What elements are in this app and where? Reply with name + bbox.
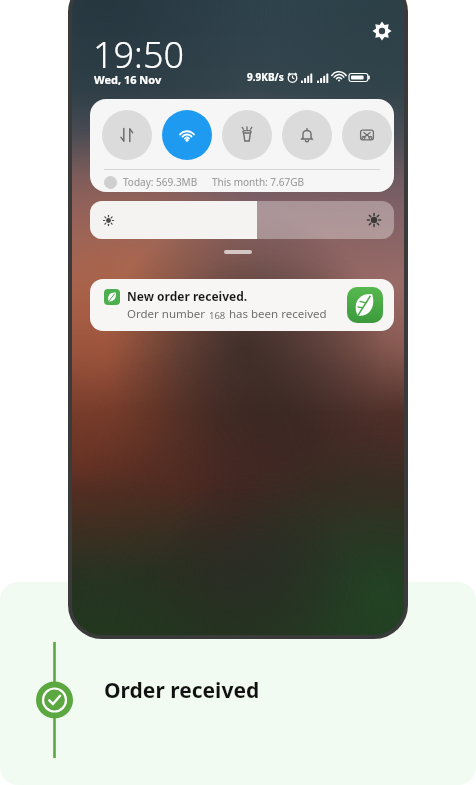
button[interactable]: Today: 569.3MB — [104, 173, 304, 191]
staticText: has been received — [226, 306, 327, 322]
staticText: New order received. — [127, 288, 248, 304]
button[interactable]: Order received — [104, 676, 260, 705]
button[interactable]: Brightness — [90, 201, 394, 239]
staticText: Order number — [127, 306, 209, 322]
button[interactable]: Settings — [369, 18, 395, 44]
button[interactable]: Mobile data — [102, 110, 152, 160]
staticText: This month: 7.67GB — [212, 175, 304, 189]
button[interactable]: Wi-Fi — [162, 110, 212, 160]
button[interactable]: Screenshot — [342, 110, 392, 160]
staticText: 168 — [209, 309, 226, 322]
button[interactable]: 19:50 — [93, 30, 185, 79]
staticText: 19:50 — [93, 30, 185, 79]
button[interactable]: New order received. — [90, 279, 394, 331]
button[interactable]: Flashlight — [222, 110, 272, 160]
staticText: Wed, 16 Nov — [94, 72, 162, 87]
button[interactable]: Ringer — [282, 110, 332, 160]
staticText: Today: 569.3MB — [123, 175, 198, 189]
staticText: Order received — [104, 676, 260, 705]
staticText: 9.9KB/s — [247, 70, 284, 84]
